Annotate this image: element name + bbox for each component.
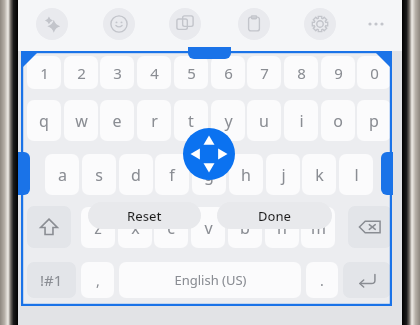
staticText: i xyxy=(299,110,304,132)
button[interactable]: v xyxy=(191,207,225,248)
button[interactable]: q xyxy=(27,100,61,141)
button[interactable]: a xyxy=(45,154,79,195)
button[interactable]: n xyxy=(265,207,299,248)
staticText: l xyxy=(354,164,359,186)
button[interactable]: More options xyxy=(360,8,392,40)
button[interactable]: . xyxy=(306,262,338,298)
staticText: 4 xyxy=(150,63,159,83)
staticText: 1 xyxy=(40,63,49,83)
staticText: !#1 xyxy=(40,270,63,290)
button[interactable]: i xyxy=(284,100,318,141)
staticText: 8 xyxy=(297,63,306,83)
button[interactable]: 4 xyxy=(137,56,171,89)
staticText: b xyxy=(240,217,250,239)
button[interactable]: w xyxy=(64,100,98,141)
staticText: 2 xyxy=(77,63,86,83)
staticText: Done xyxy=(258,207,292,225)
staticText: t xyxy=(188,110,194,132)
staticText: s xyxy=(95,164,103,186)
staticText: n xyxy=(277,217,287,239)
button[interactable]: Resize right xyxy=(381,152,393,195)
button[interactable]: s xyxy=(82,154,116,195)
button[interactable]: tool4 xyxy=(304,8,336,40)
staticText: 9 xyxy=(334,63,343,83)
button[interactable]: 9 xyxy=(321,56,355,89)
button[interactable]: 7 xyxy=(247,56,281,89)
staticText: h xyxy=(241,164,251,186)
button[interactable]: Resize left xyxy=(18,152,30,195)
button[interactable]: p xyxy=(357,100,391,141)
staticText: f xyxy=(169,164,175,186)
staticText: m xyxy=(311,217,326,239)
staticText: d xyxy=(131,164,141,186)
staticText: g xyxy=(204,164,214,186)
staticText: v xyxy=(204,217,213,239)
staticText: y xyxy=(224,110,233,132)
button[interactable]: l xyxy=(339,154,373,195)
button[interactable]: !#1 xyxy=(27,262,76,298)
staticText: o xyxy=(333,110,343,132)
button[interactable]: tool1 xyxy=(103,8,135,40)
button[interactable]: m xyxy=(301,207,335,248)
staticText: z xyxy=(94,217,102,239)
button[interactable]: f xyxy=(155,154,189,195)
button[interactable]: d xyxy=(119,154,153,195)
button[interactable]: c xyxy=(154,207,188,248)
button[interactable]: key xyxy=(348,206,392,248)
button[interactable]: o xyxy=(321,100,355,141)
staticText: j xyxy=(281,164,286,186)
button[interactable]: English (US) xyxy=(119,262,301,298)
button[interactable]: e xyxy=(100,100,134,141)
button[interactable]: r xyxy=(137,100,171,141)
button[interactable]: h xyxy=(229,154,263,195)
button[interactable]: j xyxy=(266,154,300,195)
button[interactable]: , xyxy=(81,262,114,298)
staticText: 7 xyxy=(260,63,269,83)
button[interactable]: x xyxy=(118,207,152,248)
button[interactable]: 8 xyxy=(284,56,318,89)
staticText: , xyxy=(96,271,100,290)
staticText: q xyxy=(39,110,49,132)
button[interactable]: Resize top xyxy=(188,47,231,59)
staticText: 5 xyxy=(187,63,196,83)
button[interactable]: 0 xyxy=(357,56,391,89)
staticText: a xyxy=(58,164,67,186)
staticText: x xyxy=(131,217,140,239)
staticText: English (US) xyxy=(174,271,247,289)
button[interactable]: 3 xyxy=(100,56,134,89)
button[interactable]: 1 xyxy=(27,56,61,89)
staticText: 3 xyxy=(113,63,122,83)
staticText: . xyxy=(320,271,324,290)
button[interactable]: b xyxy=(228,207,262,248)
button[interactable]: 6 xyxy=(211,56,245,89)
button[interactable]: Done xyxy=(217,202,332,229)
staticText: c xyxy=(167,217,175,239)
button[interactable]: z xyxy=(81,207,115,248)
staticText: 0 xyxy=(370,63,379,83)
button[interactable]: key xyxy=(343,262,391,298)
button[interactable]: tool3 xyxy=(238,8,270,40)
button[interactable]: Move keyboard xyxy=(183,128,235,180)
button[interactable]: g xyxy=(192,154,226,195)
staticText: w xyxy=(75,110,88,132)
staticText: Reset xyxy=(127,207,162,225)
button[interactable]: k xyxy=(302,154,336,195)
button[interactable]: Reset xyxy=(88,202,201,229)
button[interactable]: tool2 xyxy=(169,8,201,40)
button[interactable]: key xyxy=(27,206,71,248)
button[interactable]: 2 xyxy=(64,56,98,89)
button[interactable]: u xyxy=(247,100,281,141)
button[interactable]: 5 xyxy=(174,56,208,89)
staticText: r xyxy=(151,110,158,132)
staticText: u xyxy=(259,110,269,132)
button[interactable]: t xyxy=(174,100,208,141)
staticText: e xyxy=(112,110,122,132)
staticText: 6 xyxy=(224,63,233,83)
button[interactable]: y xyxy=(211,100,245,141)
button[interactable]: tool0 xyxy=(36,8,68,40)
staticText: p xyxy=(369,110,379,132)
staticText: k xyxy=(315,164,324,186)
